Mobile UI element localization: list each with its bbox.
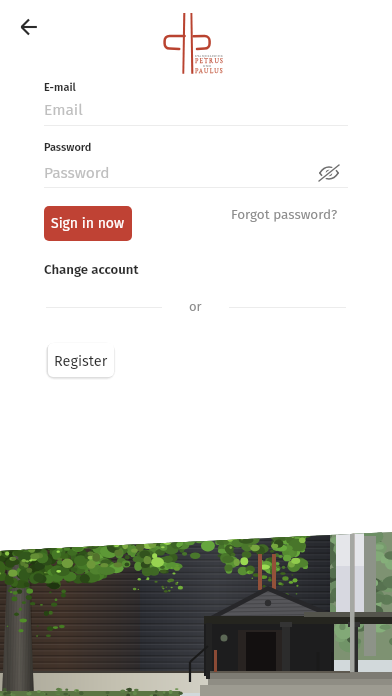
staticText: or [189,299,202,315]
staticText: Sign in now [51,215,125,232]
staticText: E-mail [44,81,76,94]
button[interactable]: Register [48,343,114,377]
staticText: Change account [44,262,139,278]
staticText: Forgot password? [231,206,338,222]
button[interactable]: Back [9,7,48,46]
staticText: PAULUS [195,67,224,75]
staticText: EVANGELISCHE [195,54,224,58]
button[interactable]: Forgot password? [229,204,340,224]
button[interactable]: Sign in now [44,206,132,241]
staticText: Register [54,352,108,369]
button[interactable]: Show password [317,161,341,185]
staticText: Password [44,164,317,183]
button[interactable]: Change account [44,259,139,281]
staticText: Email [44,101,83,120]
staticText: Password [44,141,92,154]
staticText: UND [203,64,212,68]
staticText: PETRUS [195,57,224,65]
